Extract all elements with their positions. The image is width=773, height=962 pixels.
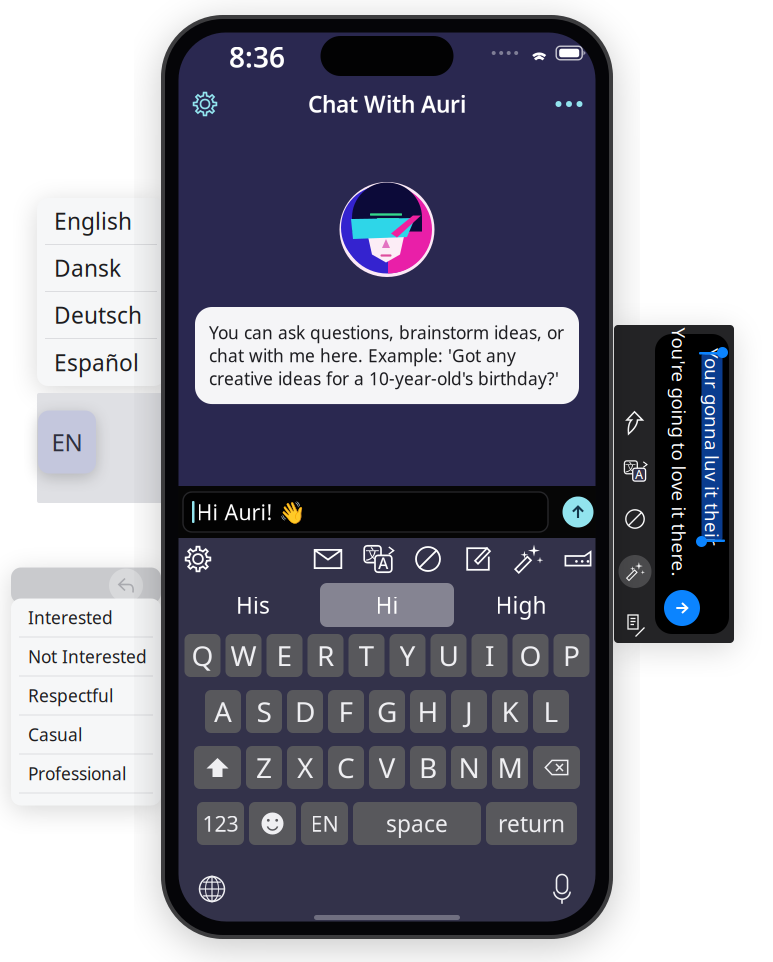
staticText: X (297, 749, 313, 786)
staticText: EN (51, 426, 82, 458)
button[interactable]: space (353, 802, 481, 845)
staticText: 123 (202, 809, 238, 838)
button[interactable]: F (328, 690, 364, 733)
staticText: Q (191, 637, 213, 674)
button[interactable]: Snippets (558, 541, 598, 577)
staticText: S (256, 693, 271, 730)
staticText: A (378, 554, 387, 571)
button[interactable]: O (512, 634, 548, 677)
button[interactable]: Apply suggestion (659, 585, 705, 631)
staticText: English (54, 206, 132, 236)
staticText: His (236, 590, 270, 620)
staticText: Casual (28, 723, 82, 746)
button[interactable]: Hi (320, 583, 454, 627)
staticText: E (276, 637, 292, 674)
staticText: Interested (28, 606, 113, 629)
staticText: I (485, 637, 494, 674)
staticText: C (337, 749, 355, 786)
button[interactable]: More options (546, 82, 592, 126)
button[interactable]: S (246, 690, 282, 733)
button[interactable]: Casual (11, 715, 161, 754)
button[interactable]: EN (301, 802, 348, 845)
button[interactable]: E (266, 634, 302, 677)
button[interactable]: Interested (11, 598, 161, 637)
button[interactable]: Send (559, 491, 597, 533)
staticText: 文 (624, 460, 636, 474)
staticText: Hi (375, 590, 398, 620)
button[interactable]: Shift (194, 746, 241, 789)
staticText: Z (256, 749, 272, 786)
staticText: 8:36 (229, 38, 285, 76)
button[interactable]: A (205, 690, 241, 733)
staticText: F (338, 693, 353, 730)
button[interactable]: Y (389, 634, 425, 677)
staticText: Chat With Auri (308, 89, 466, 119)
button[interactable]: Switch keyboard (190, 868, 234, 910)
button[interactable]: T (348, 634, 384, 677)
button[interactable]: V (369, 746, 405, 789)
staticText: Your gonna luv it their (613, 435, 773, 459)
staticText: Dansk (54, 253, 121, 283)
staticText: You can ask questions, brainstorm ideas,… (209, 321, 564, 390)
button[interactable]: Not Interested (11, 637, 161, 676)
button[interactable]: AI rewrite (508, 541, 548, 577)
staticText: Not Interested (28, 645, 147, 668)
button[interactable]: N (451, 746, 487, 789)
button[interactable]: High (454, 584, 588, 626)
button[interactable]: C (328, 746, 364, 789)
button[interactable]: return (486, 802, 577, 845)
button[interactable]: Dictate (540, 868, 584, 910)
staticText: Hi Auri! 👋 (196, 498, 305, 526)
button[interactable]: 123 (197, 802, 244, 845)
button[interactable]: EN (38, 410, 96, 473)
button[interactable]: Email (308, 541, 348, 577)
button[interactable]: Deutsch (37, 292, 165, 339)
staticText: EN (310, 809, 338, 838)
staticText: Professional (28, 762, 126, 785)
staticText: R (317, 637, 334, 674)
button[interactable]: Delete (533, 746, 580, 789)
button[interactable]: P (553, 634, 589, 677)
button[interactable]: H (410, 690, 446, 733)
staticText: V (378, 749, 395, 786)
button[interactable]: Translate (358, 541, 398, 577)
staticText: L (543, 693, 558, 730)
staticText: D (295, 693, 315, 730)
staticText: You're going to love it there. (554, 440, 773, 464)
staticText: O (519, 637, 541, 674)
button[interactable]: K (492, 690, 528, 733)
button[interactable]: Professional (11, 754, 161, 793)
button[interactable]: I (471, 634, 507, 677)
button[interactable]: Keyboard settings (178, 541, 218, 577)
staticText: W (230, 637, 256, 674)
button[interactable]: J (451, 690, 487, 733)
button[interactable]: R (307, 634, 343, 677)
button[interactable]: X (287, 746, 323, 789)
staticText: 文 (367, 548, 379, 562)
staticText: J (465, 693, 473, 730)
staticText: M (497, 749, 522, 786)
button[interactable]: Respectful (11, 676, 161, 715)
button[interactable]: Q (184, 634, 220, 677)
button[interactable]: Emoji (249, 802, 296, 845)
button[interactable]: B (410, 746, 446, 789)
staticText: K (501, 693, 518, 730)
button[interactable]: His (186, 584, 320, 626)
button[interactable]: M (492, 746, 528, 789)
button[interactable]: Z (246, 746, 282, 789)
staticText: Y (399, 637, 415, 674)
button[interactable]: Settings (182, 82, 228, 126)
button[interactable]: L (533, 690, 569, 733)
button[interactable]: G (369, 690, 405, 733)
button[interactable]: English (37, 198, 165, 245)
button[interactable]: U (430, 634, 466, 677)
button[interactable]: W (225, 634, 261, 677)
button[interactable]: Block (408, 541, 448, 577)
button[interactable]: D (287, 690, 323, 733)
button[interactable]: Español (37, 339, 165, 386)
staticText: Español (54, 347, 139, 377)
staticText: return (498, 808, 565, 838)
button[interactable]: Dansk (37, 245, 165, 292)
button[interactable]: Compose (458, 541, 498, 577)
staticText: G (377, 693, 397, 730)
